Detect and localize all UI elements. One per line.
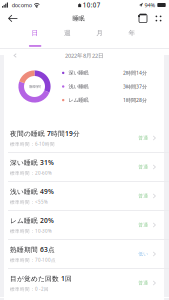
staticText: 目が覚めた回数 1回 [10, 274, 72, 283]
staticText: 3時間37分 [123, 83, 147, 90]
button[interactable]: 目が覚めた回数 1回 [0, 269, 169, 298]
staticText: docomo [12, 1, 32, 9]
button[interactable]: 月 [83, 27, 116, 48]
button[interactable]: 年 [116, 27, 148, 48]
button[interactable]: 深い睡眠 31% [0, 153, 169, 182]
staticText: 睡眠時間 [28, 84, 40, 89]
staticText: 標準時間：<55% [10, 199, 48, 205]
staticText: 94% [144, 1, 155, 9]
staticText: 深い睡眠 [68, 70, 88, 76]
staticText: 浅い睡眠 49% [10, 187, 54, 196]
staticText: 週 [64, 29, 71, 37]
staticText: 標準時間：10-30% [10, 228, 52, 234]
staticText: 標準時間：6-10時間 [10, 141, 55, 147]
staticText: レム睡眠 [68, 97, 88, 103]
staticText: 月 [96, 29, 103, 37]
button[interactable]: 週 [51, 27, 83, 48]
button[interactable]: 戻る [4, 10, 22, 26]
button[interactable]: 前の日 [8, 49, 22, 62]
button[interactable]: レム睡眠 20% [0, 211, 169, 240]
staticText: 普通 [138, 222, 148, 228]
staticText: 2022年8月22日 [65, 52, 104, 59]
staticText: 10:07 [83, 1, 101, 9]
staticText: 熟睡期間 63点 [10, 245, 55, 254]
button[interactable]: 熟睡期間 63点 [0, 240, 169, 269]
button[interactable]: メニュー [151, 10, 166, 26]
staticText: 普通 [138, 280, 148, 286]
staticText: 普通 [138, 135, 148, 141]
staticText: 標準時間：0 - 2回 [10, 286, 49, 292]
staticText: 浅い睡眠 [68, 83, 88, 90]
staticText: 低い [138, 251, 148, 257]
staticText: 日 [32, 29, 39, 37]
staticText: 1時間28分 [123, 97, 147, 103]
button[interactable]: 夜間の睡眠 7時間19分 [0, 124, 169, 153]
staticText: 睡眠 [72, 15, 84, 22]
staticText: 普通 [138, 193, 148, 199]
staticText: 標準時間：20-60% [10, 170, 52, 176]
staticText: 標準時間：70-100点 [10, 257, 56, 263]
staticText: 夜間の睡眠 7時間19分 [10, 129, 80, 138]
button[interactable]: カレンダー [135, 10, 151, 26]
staticText: 年 [128, 29, 135, 37]
button[interactable]: 浅い睡眠 49% [0, 182, 169, 211]
staticText: 普通 [138, 164, 148, 170]
staticText: 深い睡眠 31% [10, 158, 54, 167]
staticText: レム睡眠 20% [10, 216, 54, 225]
staticText: 2時間14分 [123, 69, 147, 76]
button[interactable]: 日 [19, 27, 51, 48]
